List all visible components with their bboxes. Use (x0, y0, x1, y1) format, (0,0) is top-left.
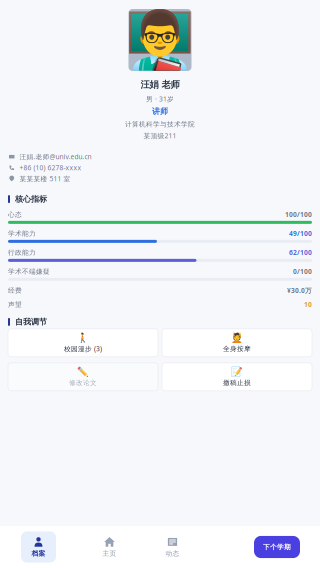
button[interactable]: 动态 (155, 531, 190, 563)
staticText: 心态 (8, 210, 22, 218)
staticText: 自我调节 (15, 317, 47, 327)
staticText: 校园漫步 (3) (64, 344, 102, 353)
staticText: ¥30.0万 (287, 286, 312, 295)
staticText: +86 (10) 6278-xxxx (19, 163, 81, 172)
button[interactable]: 下个学期 (254, 536, 300, 558)
staticText: 动态 (165, 549, 179, 558)
staticText: 经费 (8, 286, 22, 294)
staticText: 声望 (8, 300, 22, 308)
staticText: 10 (304, 300, 312, 309)
button[interactable]: 💆 (162, 329, 312, 357)
staticText: 📝 (231, 367, 243, 378)
staticText: 学术能力 (8, 229, 36, 237)
staticText: ✏️ (77, 367, 89, 378)
staticText: 汪娟.老师@univ.edu.cn (19, 152, 91, 161)
staticText: 某顶级211 (143, 131, 176, 140)
button[interactable]: 档案 (21, 531, 56, 563)
staticText: 下个学期 (263, 543, 291, 551)
staticText: 讲师 (152, 106, 168, 116)
staticText: 主页 (102, 549, 116, 558)
staticText: 49/100 (289, 229, 312, 238)
staticText: 62/100 (289, 248, 312, 257)
staticText: 计算机科学与技术学院 (125, 120, 195, 128)
staticText: 修改论文 (69, 379, 97, 387)
staticText: 👨‍🏫 (125, 8, 195, 72)
staticText: 🚶 (77, 333, 89, 343)
staticText: 100/100 (285, 210, 312, 219)
staticText: 某某某楼 511 室 (19, 174, 70, 183)
staticText: 行政能力 (8, 248, 36, 256)
staticText: 0/100 (293, 267, 312, 276)
staticText: 学术不端嫌疑 (8, 267, 50, 275)
button[interactable]: 🚶 (8, 329, 158, 357)
staticText: 撤稿止损 (223, 379, 251, 387)
staticText: 汪娟 老师 (140, 79, 179, 90)
staticText: 全身按摩 (223, 345, 251, 353)
staticText: 男 · 31岁 (146, 94, 174, 103)
button[interactable]: ✏️ (8, 363, 158, 391)
staticText: 💆 (231, 333, 243, 344)
staticText: 核心指标 (15, 194, 47, 204)
button[interactable]: 📝 (162, 363, 312, 391)
staticText: 档案 (31, 549, 45, 558)
button[interactable]: 主页 (92, 531, 127, 563)
